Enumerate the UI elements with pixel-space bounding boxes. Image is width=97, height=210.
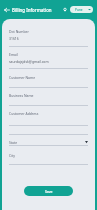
button[interactable]: Email bbox=[2, 47, 95, 69]
staticText: Billing Information bbox=[12, 7, 52, 13]
button[interactable]: Save bbox=[24, 186, 73, 196]
staticText: Business Name bbox=[9, 93, 88, 98]
button[interactable]: Customer Address bbox=[2, 106, 95, 126]
button[interactable]: State bbox=[2, 135, 95, 146]
staticText: Customer Address bbox=[9, 111, 88, 116]
button[interactable]: Back bbox=[2, 5, 11, 14]
staticText: 31616 bbox=[9, 36, 19, 41]
staticText: Email bbox=[9, 52, 88, 57]
button[interactable]: Customer Name bbox=[2, 69, 95, 88]
button[interactable]: Business Name bbox=[2, 88, 95, 106]
staticText: Save bbox=[45, 189, 53, 194]
staticText: City bbox=[9, 153, 88, 158]
button[interactable]: Location bbox=[61, 6, 68, 13]
staticText: Customer Name bbox=[9, 75, 88, 80]
staticText: State bbox=[9, 140, 85, 145]
button[interactable]: Pune bbox=[70, 6, 93, 13]
button[interactable]: Dot Number bbox=[2, 19, 95, 47]
staticText: Dot Number bbox=[9, 29, 88, 34]
button[interactable]: City bbox=[2, 146, 95, 165]
button[interactable] bbox=[2, 126, 95, 135]
staticText: Pune bbox=[75, 8, 83, 12]
staticText: saurdajsjdsk@gmail.com bbox=[9, 59, 49, 64]
